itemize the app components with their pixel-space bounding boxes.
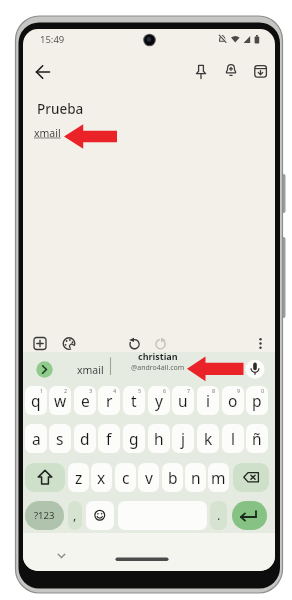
staticText: 4	[113, 387, 117, 394]
button[interactable]	[86, 501, 114, 530]
button[interactable]: o	[222, 386, 244, 415]
staticText: c	[122, 467, 130, 488]
staticText: w	[54, 390, 67, 411]
button[interactable]: christian	[124, 350, 192, 375]
staticText: t	[131, 390, 137, 411]
staticText: ñ	[252, 428, 262, 449]
button[interactable]: n	[185, 463, 206, 492]
staticText: 3	[89, 387, 93, 394]
staticText: 0	[261, 387, 265, 394]
button[interactable]: h	[148, 424, 170, 453]
staticText: @andro4all.com	[131, 363, 185, 373]
staticText: m	[211, 467, 226, 488]
button[interactable]: x	[91, 463, 112, 492]
staticText: xmail	[77, 363, 104, 377]
staticText: l	[231, 428, 235, 449]
staticText: g	[129, 428, 139, 449]
button[interactable]: xmail	[34, 126, 61, 140]
button[interactable]: m	[208, 463, 229, 492]
button[interactable]: v	[138, 463, 159, 492]
staticText: 8	[212, 387, 216, 394]
staticText: p	[252, 390, 262, 411]
button[interactable]	[25, 463, 65, 492]
button[interactable]: r	[98, 386, 120, 415]
staticText: a	[32, 428, 41, 449]
button[interactable]: b	[162, 463, 183, 492]
button[interactable]: z	[68, 463, 89, 492]
staticText: christian	[138, 350, 178, 362]
staticText: f	[106, 428, 112, 449]
button[interactable]	[245, 359, 265, 379]
button[interactable]: e	[74, 386, 96, 415]
button[interactable]: q	[25, 386, 47, 415]
staticText: k	[204, 428, 213, 449]
button[interactable]: ñ	[246, 424, 268, 453]
button[interactable]: c	[115, 463, 136, 492]
button[interactable]: i	[197, 386, 219, 415]
button[interactable]: .	[210, 501, 227, 530]
button[interactable]: xmail	[68, 360, 112, 379]
staticText: z	[75, 467, 83, 488]
button[interactable]: y	[148, 386, 170, 415]
button[interactable]	[221, 61, 241, 81]
staticText: 2	[64, 387, 68, 394]
button[interactable]: f	[98, 424, 120, 453]
staticText: x	[97, 467, 106, 488]
staticText: h	[154, 428, 164, 449]
staticText: o	[228, 390, 238, 411]
button[interactable]	[191, 61, 211, 81]
staticText: 1	[40, 387, 44, 394]
staticText: q	[31, 390, 41, 411]
button[interactable]	[233, 463, 269, 492]
button[interactable]	[250, 61, 270, 81]
staticText: 7	[187, 387, 191, 394]
button[interactable]	[34, 359, 55, 380]
button[interactable]	[250, 333, 270, 353]
staticText: 9	[237, 387, 241, 394]
button[interactable]	[33, 62, 53, 82]
button[interactable]	[232, 501, 267, 530]
button[interactable]	[124, 333, 144, 353]
staticText: xmail	[34, 126, 61, 140]
button[interactable]: g	[123, 424, 145, 453]
staticText: Prueba	[37, 100, 84, 118]
button[interactable]: w	[49, 386, 71, 415]
staticText: 5	[138, 387, 142, 394]
staticText: y	[155, 390, 163, 411]
staticText: v	[145, 467, 153, 488]
button[interactable]: ?123	[25, 501, 64, 530]
staticText: 6	[163, 387, 167, 394]
button[interactable]	[100, 550, 184, 566]
staticText: ?123	[34, 509, 55, 522]
staticText: u	[178, 390, 188, 411]
button[interactable]: s	[49, 424, 71, 453]
button[interactable]: u	[172, 386, 194, 415]
button[interactable]	[59, 333, 79, 353]
button[interactable]	[30, 333, 50, 353]
button[interactable]: a	[25, 424, 47, 453]
button[interactable]: j	[172, 424, 194, 453]
staticText: i	[206, 390, 210, 411]
staticText: ,	[73, 507, 77, 524]
button[interactable]: d	[74, 424, 96, 453]
button[interactable]	[150, 333, 170, 353]
staticText: 15:49	[40, 33, 65, 46]
staticText: e	[81, 390, 90, 411]
button[interactable]: l	[222, 424, 244, 453]
button[interactable]: ,	[68, 501, 82, 530]
staticText: b	[168, 467, 178, 488]
staticText: n	[191, 467, 201, 488]
staticText: s	[56, 428, 64, 449]
staticText: j	[181, 428, 185, 449]
button[interactable]: t	[123, 386, 145, 415]
staticText: d	[80, 428, 90, 449]
staticText: .	[217, 507, 221, 524]
button[interactable]: k	[197, 424, 219, 453]
staticText: r	[106, 390, 113, 411]
button[interactable]: p	[246, 386, 268, 415]
